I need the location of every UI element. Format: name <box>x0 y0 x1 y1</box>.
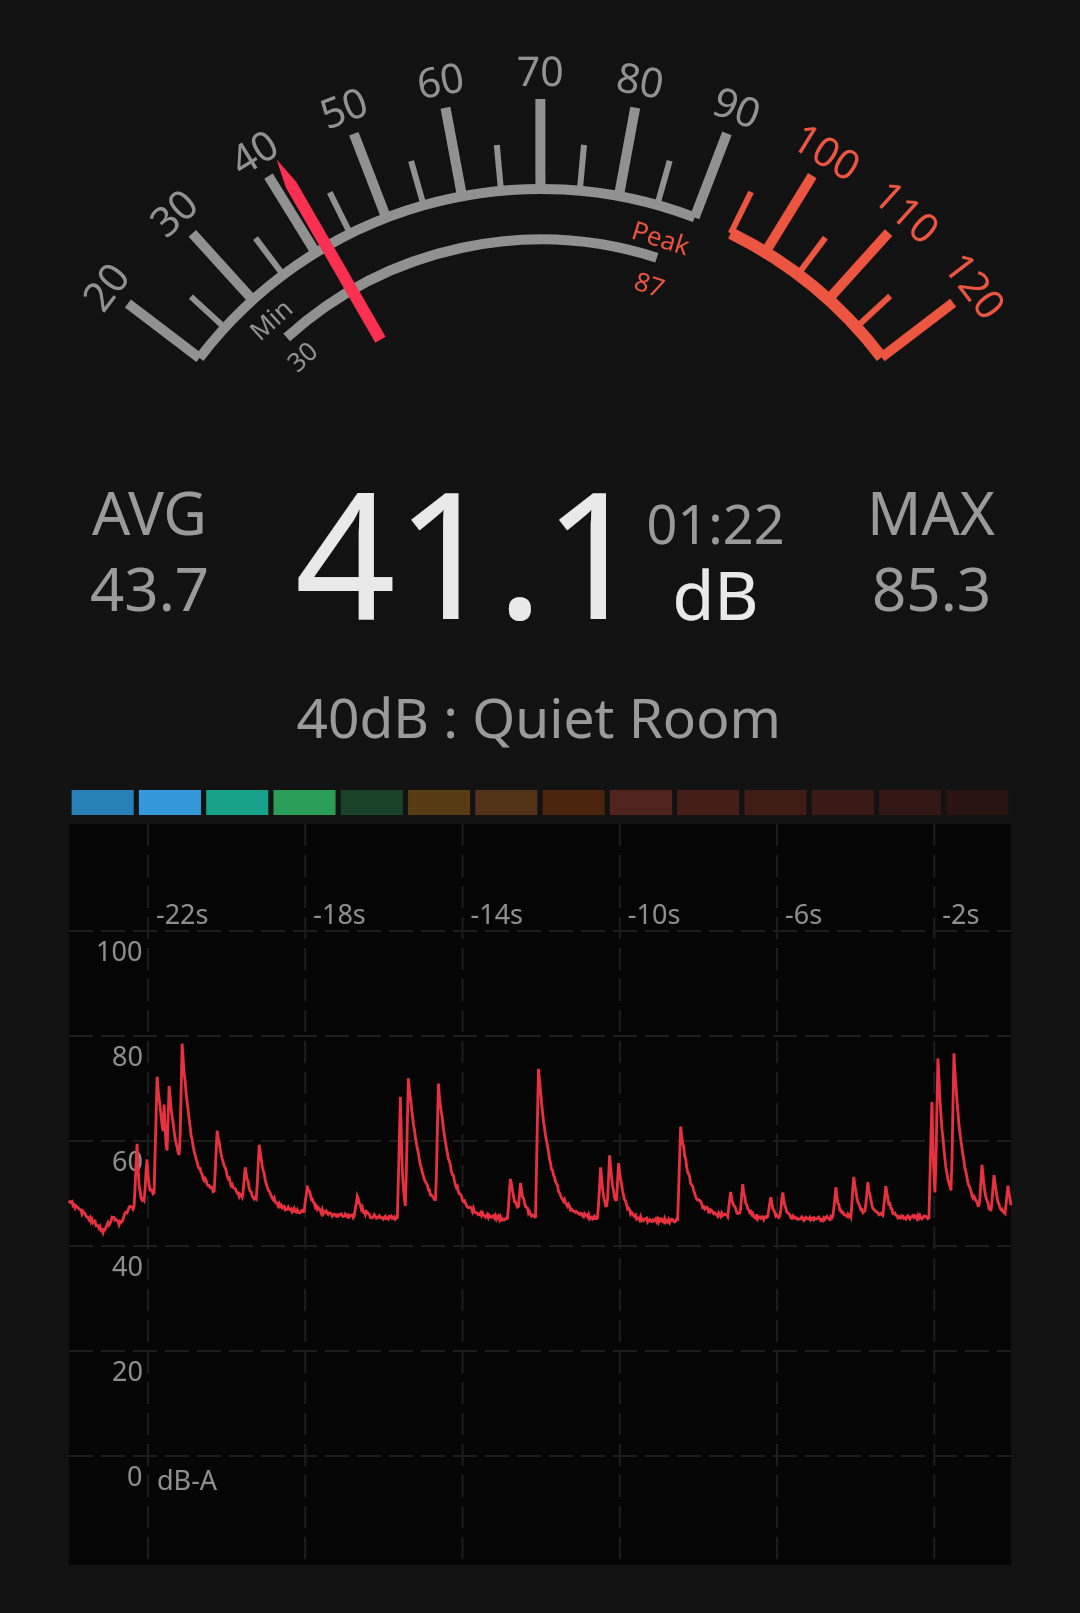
button[interactable]: 40dB : Quiet Room <box>280 675 800 755</box>
button[interactable]: Sound level gauge, 41.1 decibels <box>60 20 1020 420</box>
button[interactable]: Maximum 85.3 decibels <box>850 460 1020 630</box>
button[interactable]: Current level 41.1 decibels <box>260 460 620 630</box>
button[interactable]: Sound level history chart <box>69 787 1011 1565</box>
button[interactable]: Average 43.7 decibels <box>70 460 240 630</box>
button[interactable]: Elapsed time 01:22 <box>630 480 810 630</box>
